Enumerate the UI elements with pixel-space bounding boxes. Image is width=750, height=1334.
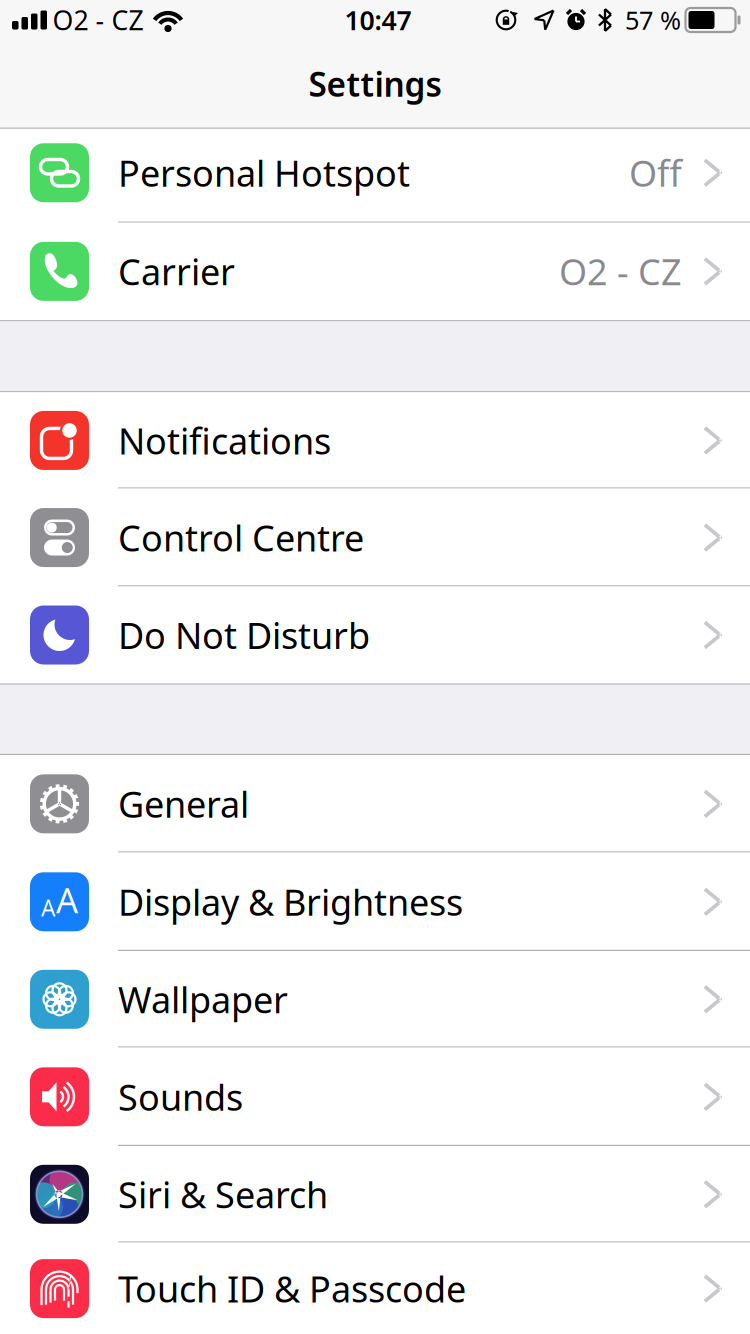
button[interactable]: Do Not Disturb <box>0 586 750 683</box>
staticText: O2 - CZ <box>52 2 143 38</box>
staticText: Personal Hotspot <box>118 149 410 197</box>
button[interactable]: Touch ID & Passcode <box>0 1243 750 1334</box>
button[interactable]: Carrier <box>0 223 750 320</box>
staticText: A <box>41 893 55 923</box>
staticText: Carrier <box>118 247 235 295</box>
button[interactable]: Wallpaper <box>0 951 750 1048</box>
staticText: Settings <box>308 62 441 106</box>
button[interactable]: Notifications <box>0 392 750 489</box>
staticText: Siri & Search <box>118 1170 328 1218</box>
button[interactable]: A <box>0 853 750 951</box>
staticText: Notifications <box>118 416 331 464</box>
staticText: 10:47 <box>344 2 411 38</box>
button[interactable]: Personal Hotspot <box>0 129 750 223</box>
staticText: Touch ID & Passcode <box>118 1265 466 1312</box>
staticText: General <box>118 780 249 828</box>
staticText: Off <box>629 149 682 197</box>
staticText: Do Not Disturb <box>118 611 370 659</box>
staticText: Control Centre <box>118 514 364 561</box>
staticText: 57 % <box>625 3 681 37</box>
staticText: Wallpaper <box>118 975 288 1023</box>
staticText: Display & Brightness <box>118 878 463 926</box>
staticText: O2 - CZ <box>559 247 682 295</box>
button[interactable]: Sounds <box>0 1048 750 1146</box>
staticText: A <box>56 877 78 923</box>
staticText: Sounds <box>118 1073 243 1121</box>
button[interactable]: General <box>0 755 750 853</box>
button[interactable]: Siri & Search <box>0 1146 750 1243</box>
button[interactable]: Control Centre <box>0 489 750 586</box>
